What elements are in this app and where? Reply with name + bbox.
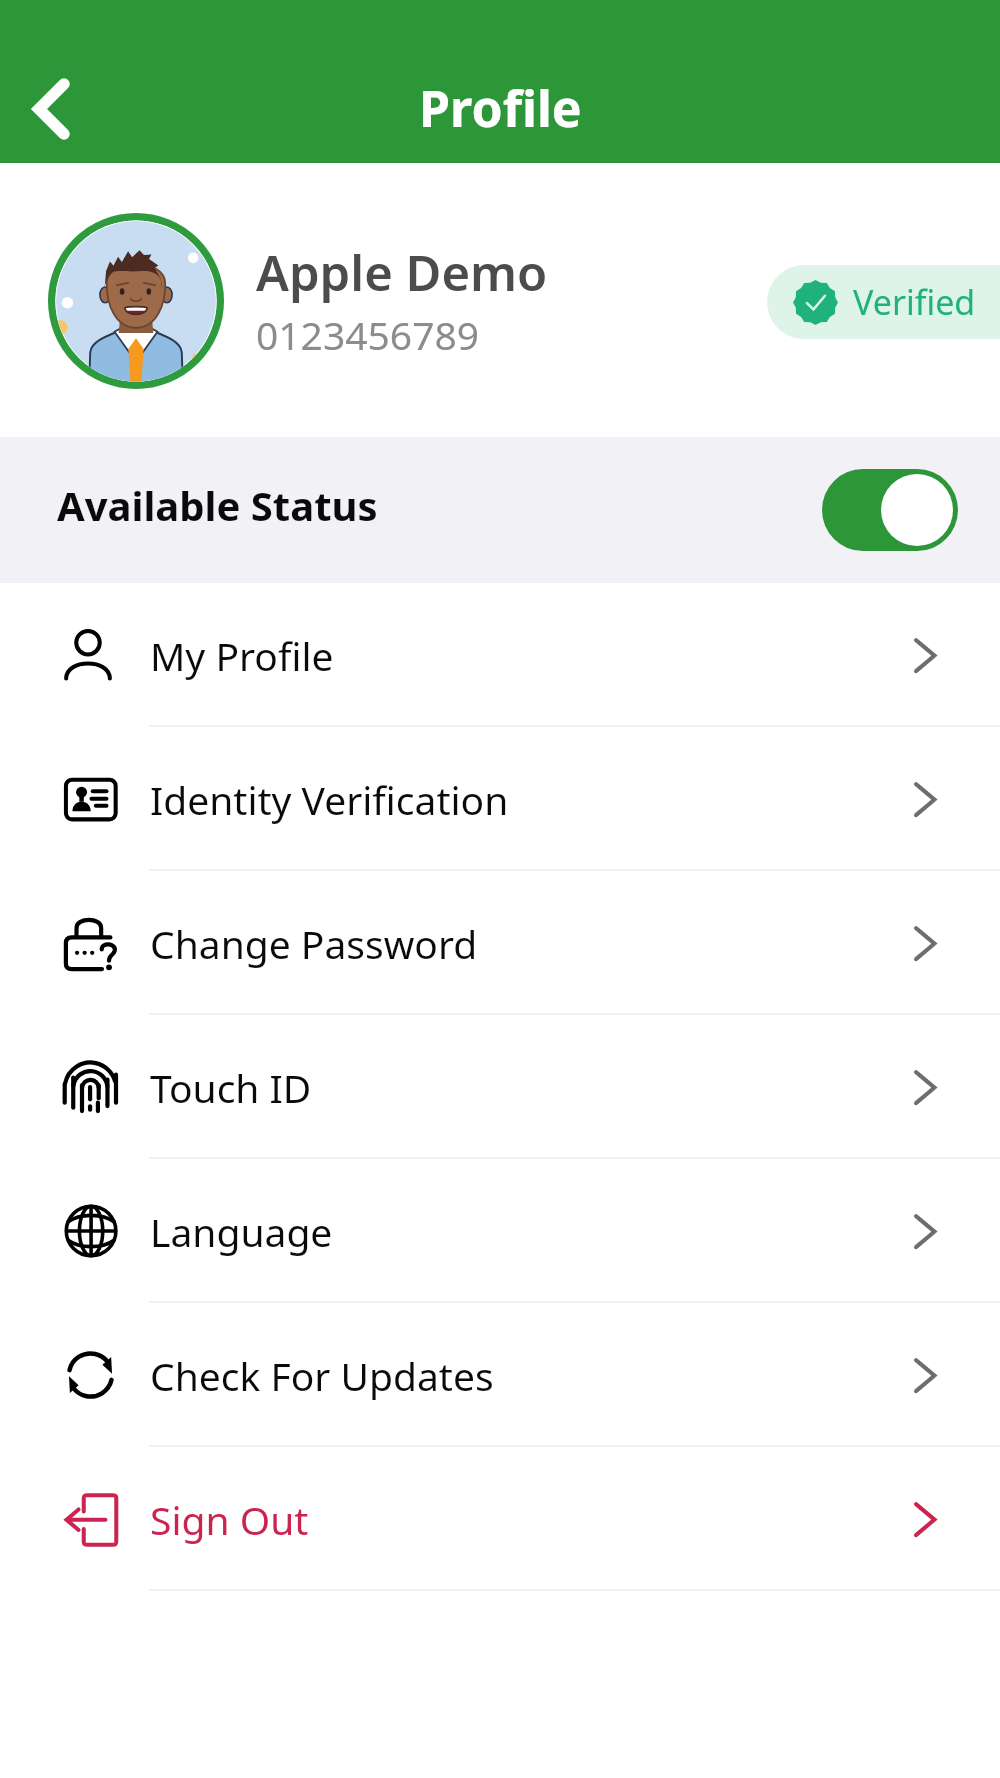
button[interactable]: Sign Out — [0, 1447, 1000, 1591]
staticText: My Profile — [150, 629, 334, 682]
staticText: Change Password — [150, 917, 478, 970]
staticText: Profile — [419, 74, 582, 142]
button[interactable]: Back — [13, 69, 93, 149]
staticText: Verified — [853, 279, 976, 325]
staticText: Sign Out — [150, 1493, 309, 1546]
button[interactable]: Verified — [767, 265, 1000, 339]
button[interactable]: Check For Updates — [0, 1303, 1000, 1447]
staticText: Language — [150, 1205, 333, 1258]
button[interactable]: Touch ID — [0, 1015, 1000, 1159]
button[interactable]: Available Status toggle — [822, 469, 958, 551]
button[interactable]: My Profile — [0, 583, 1000, 727]
staticText: Available Status — [57, 478, 378, 532]
button[interactable]: Language — [0, 1159, 1000, 1303]
button[interactable]: Identity Verification — [0, 727, 1000, 871]
staticText: 0123456789 — [256, 308, 480, 361]
staticText: Apple Demo — [256, 239, 548, 306]
button[interactable]: Change Password — [0, 871, 1000, 1015]
staticText: Check For Updates — [150, 1349, 494, 1402]
staticText: Touch ID — [150, 1061, 312, 1114]
staticText: Identity Verification — [150, 773, 509, 826]
